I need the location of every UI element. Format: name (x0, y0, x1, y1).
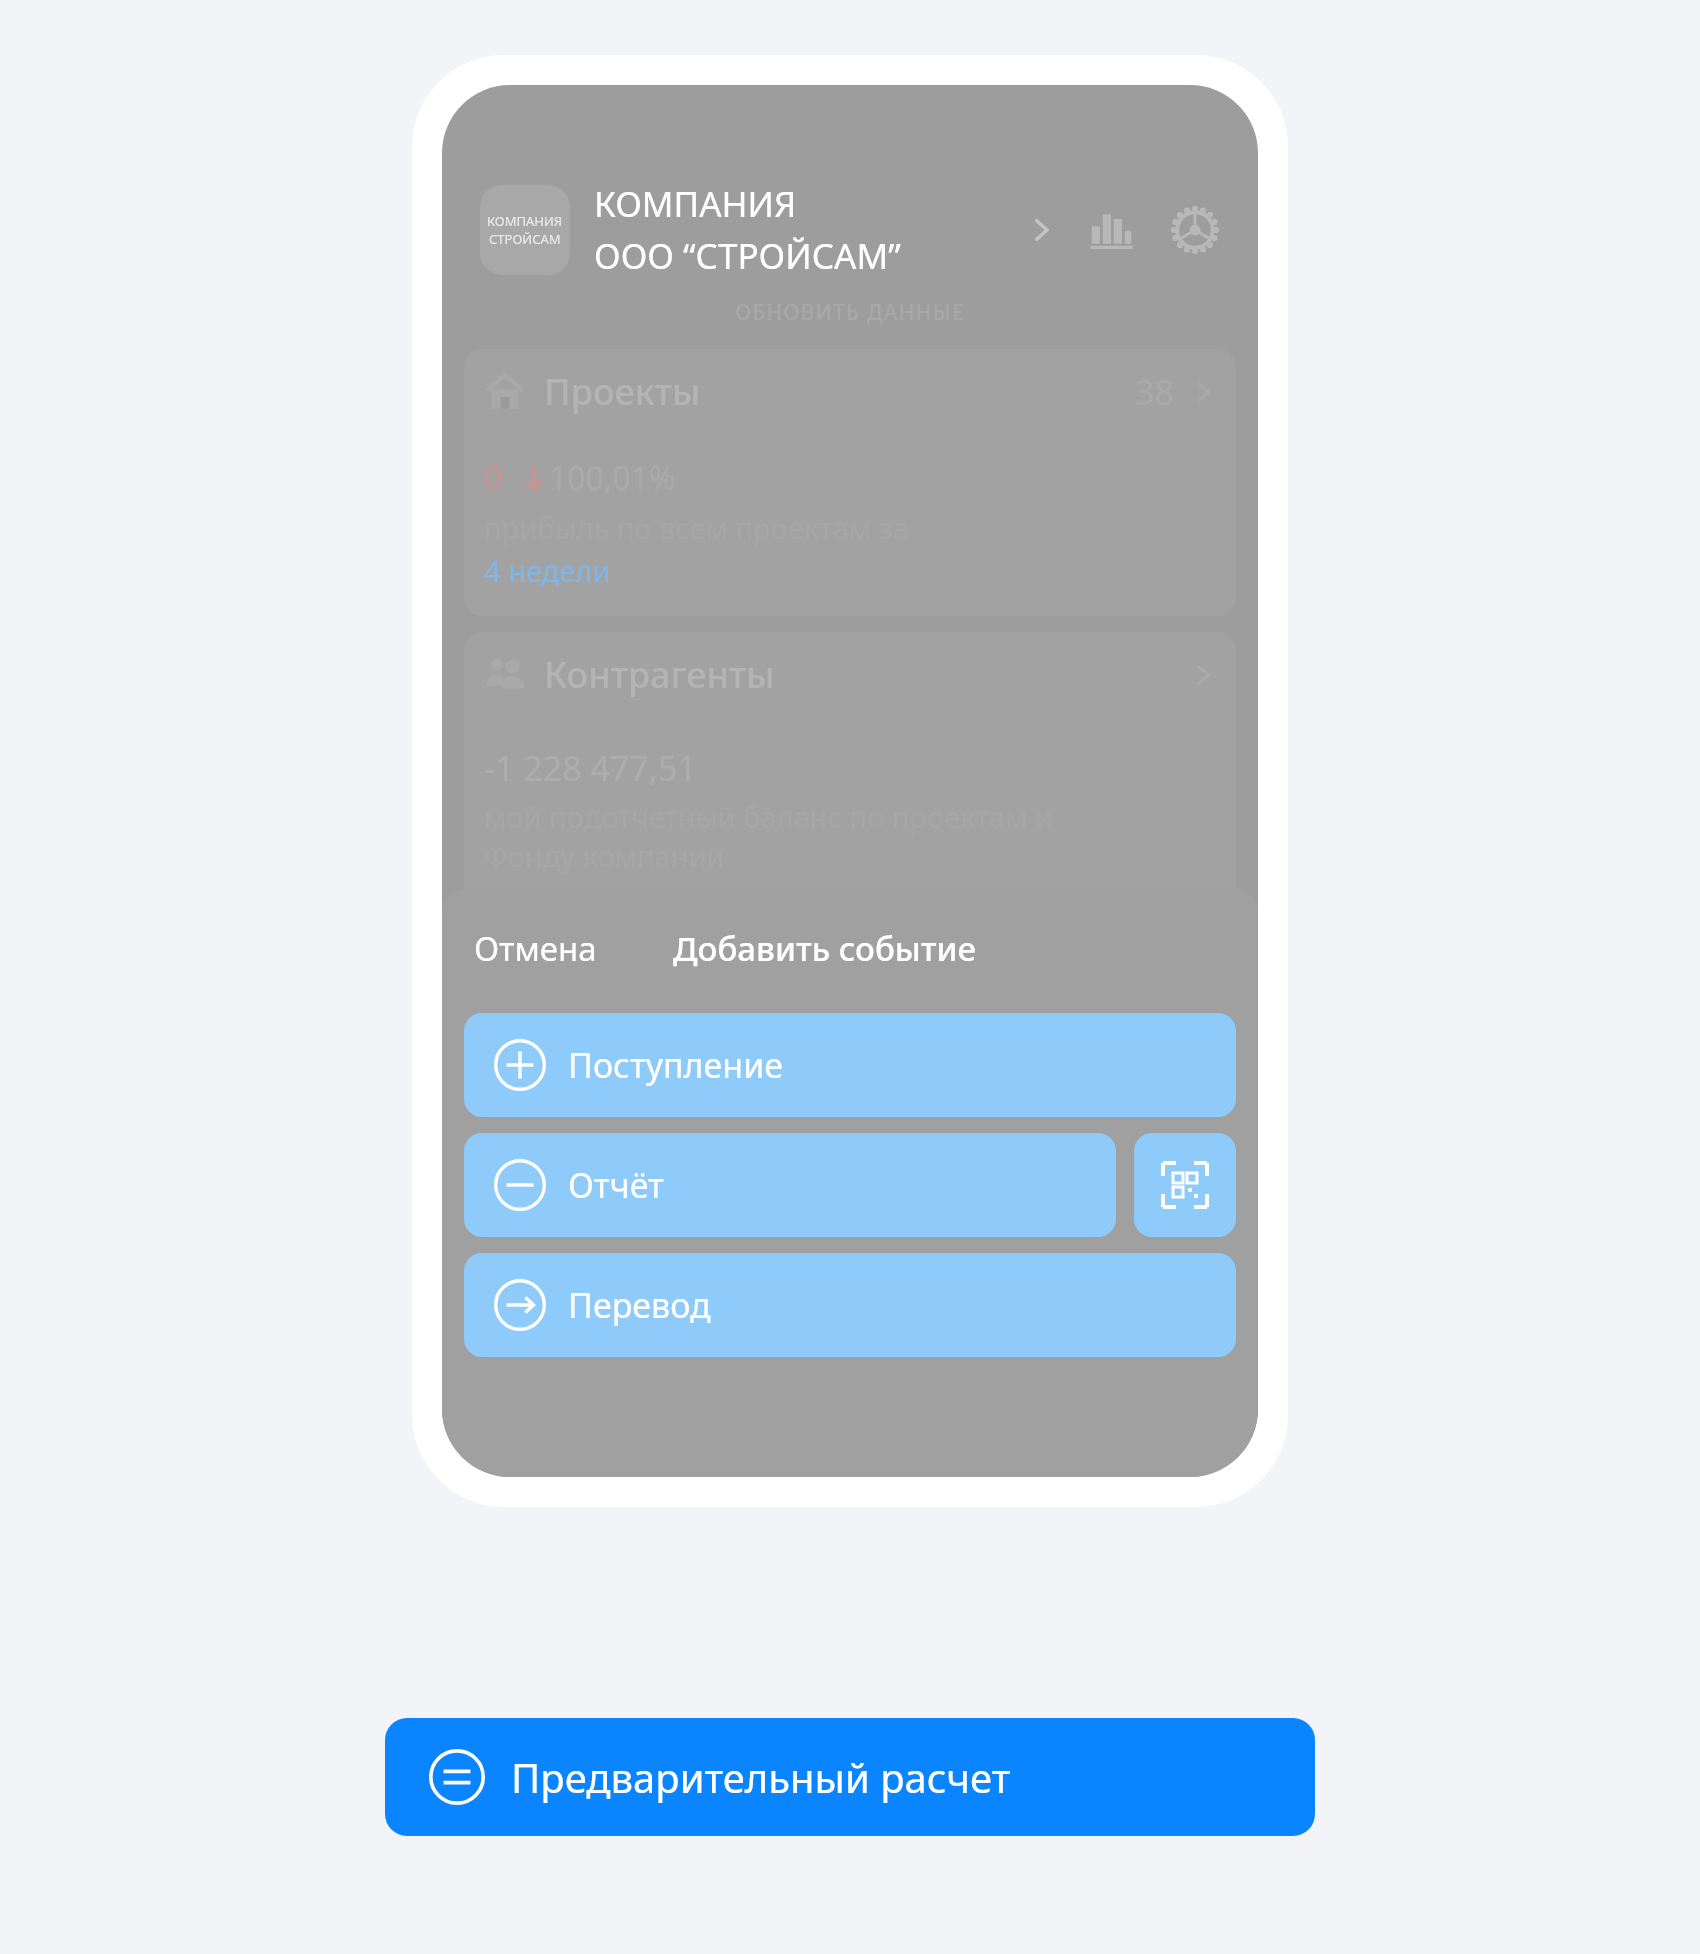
staticText: КОМПАНИЯ (487, 212, 563, 230)
button[interactable]: Перевод (464, 1253, 1236, 1357)
staticText: Контрагенты (544, 650, 1190, 699)
button[interactable]: Прайс-листы (464, 1161, 1236, 1258)
staticText: 4 недели (484, 551, 611, 590)
button[interactable]: Контрагенты (464, 632, 1236, 1032)
staticText: 17 876 (1074, 1075, 1174, 1119)
staticText: ООО “СТРОЙСАМ” (594, 232, 901, 280)
button[interactable]: Отмена (470, 922, 601, 975)
staticText: Прайс-листы (542, 1185, 1190, 1234)
staticText: -1 228 477,51 (484, 745, 697, 791)
staticText: Перевод (568, 1282, 711, 1328)
staticText: Проекты (544, 367, 1135, 416)
staticText: Поступление (568, 1042, 784, 1088)
staticText: Отчёт (568, 1162, 664, 1208)
button[interactable]: Предварительный расчет (385, 1718, 1315, 1836)
staticText: 0 (484, 456, 503, 500)
button[interactable]: КОМПАНИЯ (594, 180, 1056, 280)
staticText: КОМПАНИЯ (594, 180, 797, 228)
button[interactable]: Проекты (464, 349, 1236, 616)
button[interactable]: История событий (464, 1048, 1236, 1145)
staticText: СТРОЙСАМ (489, 230, 561, 248)
staticText: Предварительный расчет (511, 1750, 1011, 1804)
staticText: История событий (542, 1072, 993, 1121)
button[interactable]: Scan QR (1134, 1133, 1236, 1237)
staticText: Добавить событие (673, 926, 977, 971)
button[interactable]: Поступление (464, 1013, 1236, 1117)
button[interactable]: Statistics (1082, 201, 1140, 259)
button[interactable]: Settings (1166, 201, 1224, 259)
staticText: 0 (484, 915, 503, 959)
button[interactable]: Отчёт (464, 1133, 1116, 1237)
staticText: Отмена (474, 926, 597, 971)
